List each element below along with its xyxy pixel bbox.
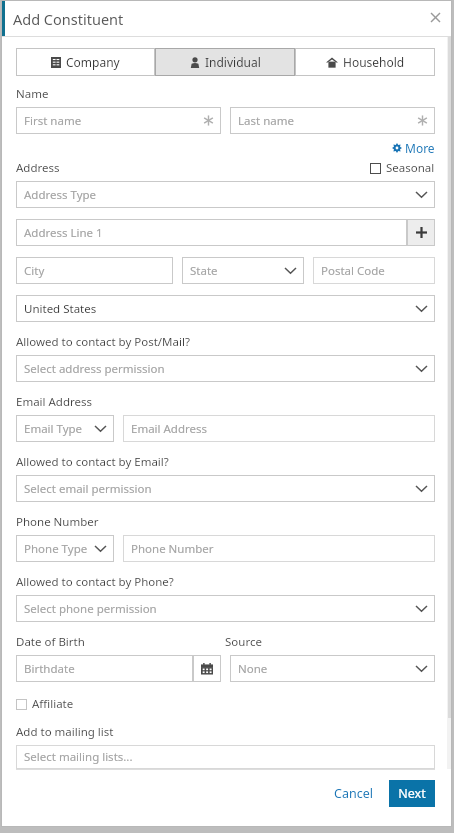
button[interactable]: Affiliate [16,696,74,712]
button[interactable]: Select address permission [16,355,435,382]
button[interactable]: Email Address [123,415,435,442]
staticText: Select mailing lists... [24,749,431,765]
staticText: Household [343,54,405,70]
staticText: Email Address [131,421,431,437]
button[interactable]: Individual [155,48,295,76]
staticText: Source [225,634,435,650]
button[interactable]: Next [389,780,435,807]
button[interactable]: Add address line [407,219,435,246]
button[interactable]: None [230,655,435,682]
button[interactable]: Postal Code [313,257,435,284]
staticText: Last name [238,113,413,129]
button[interactable]: Address Type [16,181,435,208]
button[interactable]: Close [427,9,443,25]
staticText: City [24,263,169,279]
button[interactable]: Pick date [193,655,221,682]
button[interactable]: Phone Type [16,535,114,562]
staticText: Individual [205,54,261,70]
button[interactable]: Email Type [16,415,114,442]
staticText: Date of Birth [16,634,225,650]
button[interactable]: First name [16,107,221,134]
staticText: None [238,661,412,677]
staticText: Next [398,785,426,802]
staticText: Add to mailing list [16,724,114,740]
staticText: Add Constituent [13,9,124,29]
button[interactable]: Select mailing lists... [16,745,435,769]
button[interactable]: Seasonal [370,160,435,176]
staticText: First name [24,113,199,129]
staticText: Address Type [24,187,412,203]
button[interactable]: Select email permission [16,475,435,502]
staticText: Phone Number [16,514,99,530]
staticText: Select phone permission [24,601,412,617]
staticText: State [190,263,281,279]
staticText: Email Type [24,421,91,437]
button[interactable]: Select phone permission [16,595,435,622]
button[interactable]: Household [295,48,435,76]
staticText: Phone Number [131,541,431,557]
staticText: Affiliate [32,696,74,712]
staticText: Phone Type [24,541,91,557]
staticText: More [405,140,435,156]
button[interactable]: Cancel [324,780,383,807]
staticText: Company [66,54,120,70]
button[interactable]: Address Line 1 [16,219,407,246]
staticText: Cancel [334,785,373,802]
staticText: Postal Code [321,263,431,279]
button[interactable]: Last name [230,107,435,134]
staticText: Select email permission [24,481,412,497]
button[interactable]: Company [16,48,155,76]
button[interactable]: State [182,257,304,284]
button[interactable]: City [16,257,173,284]
button[interactable]: Phone Number [123,535,435,562]
staticText: Email Address [16,394,93,410]
button[interactable]: More [392,140,435,156]
staticText: Address Line 1 [24,225,403,241]
staticText: Seasonal [386,160,435,176]
staticText: United States [24,301,412,317]
staticText: Allowed to contact by Email? [16,454,169,470]
staticText: Allowed to contact by Post/Mail? [16,334,190,350]
button[interactable]: Birthdate [16,655,193,682]
staticText: Allowed to contact by Phone? [16,574,174,590]
staticText: Name [16,86,49,102]
staticText: Select address permission [24,361,412,377]
staticText: Birthdate [24,661,189,677]
button[interactable]: United States [16,295,435,322]
staticText: Address [16,160,370,176]
